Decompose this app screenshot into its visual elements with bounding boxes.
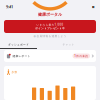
button[interactable]: ダッシュボード <box>0 40 37 49</box>
staticText: 健康レポート <box>13 54 31 58</box>
staticText: 歩数 <box>12 71 18 74</box>
staticText: チャット <box>62 43 74 46</box>
staticText: 1件の未読 <box>74 54 88 58</box>
button[interactable]: いまなら最大1,000 <box>4 20 96 33</box>
staticText: ダッシュボード <box>8 43 29 46</box>
staticText: 健康ポータル <box>38 12 62 17</box>
staticText: 9:41 <box>6 4 13 9</box>
staticText: いまなら最大1,000 <box>36 23 63 26</box>
staticText: ◍ 会員情報を連携しよう <box>33 34 66 38</box>
staticText: ▮▮ <box>92 5 94 8</box>
staticText: ポイントプレゼント中 <box>35 27 65 30</box>
button[interactable]: 健康レポート <box>4 50 96 62</box>
